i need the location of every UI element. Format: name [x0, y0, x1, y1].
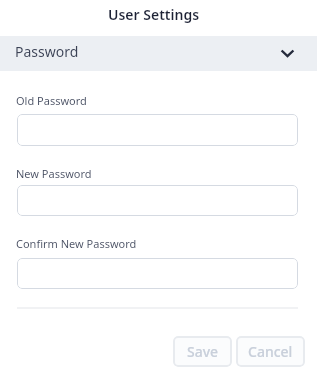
staticText: Password: [15, 42, 79, 61]
staticText: User Settings: [108, 5, 200, 24]
button[interactable]: Cancel: [236, 336, 305, 367]
button[interactable]: [17, 258, 298, 289]
staticText: Cancel: [248, 342, 293, 361]
button[interactable]: [17, 185, 298, 216]
staticText: Save: [187, 342, 219, 361]
button[interactable]: Password: [0, 36, 317, 71]
staticText: Old Password: [16, 93, 87, 108]
button[interactable]: [17, 114, 298, 146]
staticText: New Password: [16, 166, 92, 181]
staticText: Confirm New Password: [16, 236, 137, 251]
button[interactable]: Save: [173, 336, 232, 367]
